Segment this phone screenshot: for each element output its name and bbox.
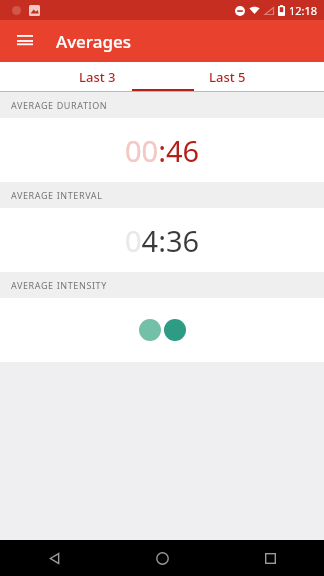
button[interactable]: Recent apps xyxy=(216,540,324,576)
staticText: 04:36 xyxy=(125,221,200,260)
button[interactable]: Last 3 xyxy=(32,62,162,92)
button[interactable]: Open navigation menu xyxy=(8,24,42,58)
staticText: AVERAGE DURATION xyxy=(11,99,108,111)
staticText: Last 5 xyxy=(209,68,246,86)
button[interactable]: Last 5 xyxy=(162,62,292,92)
staticText: 12:18 xyxy=(289,3,318,18)
staticText: 00:46 xyxy=(125,131,200,170)
staticText: Averages xyxy=(56,30,131,53)
staticText: AVERAGE INTENSITY xyxy=(11,279,107,291)
button[interactable]: Home xyxy=(108,540,216,576)
button[interactable]: Back xyxy=(0,540,108,576)
staticText: AVERAGE INTERVAL xyxy=(11,189,103,201)
staticText: Last 3 xyxy=(79,68,116,86)
